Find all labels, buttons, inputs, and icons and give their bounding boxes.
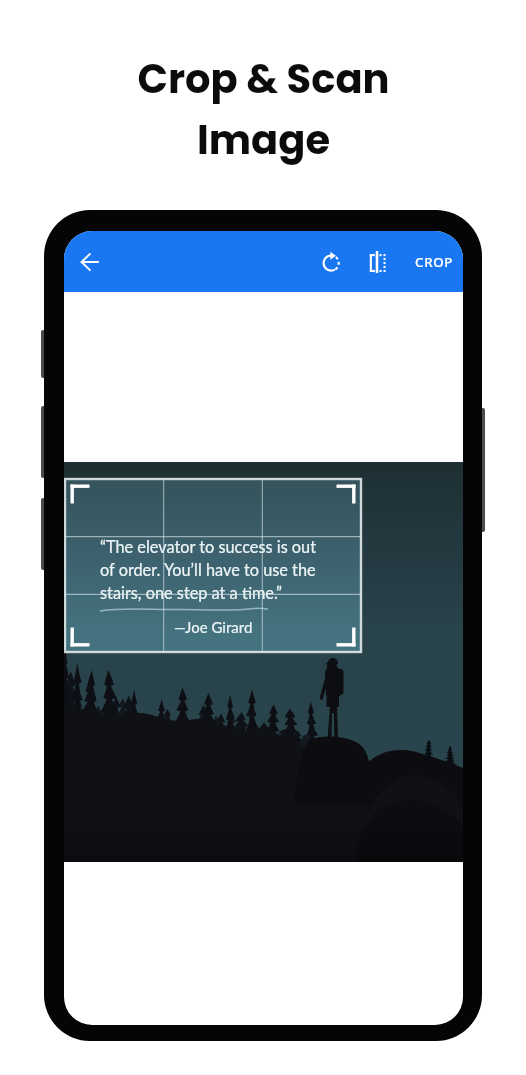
staticText: Crop & Scan Image xyxy=(137,51,390,168)
staticText: “The elevator to success is out of order… xyxy=(100,537,317,602)
staticText: —Joe Girard xyxy=(174,618,253,636)
staticText: CROP xyxy=(415,253,454,271)
button[interactable]: CROP xyxy=(404,243,462,281)
button[interactable]: Flip xyxy=(357,242,397,282)
button[interactable]: Back xyxy=(68,240,112,284)
button[interactable]: Rotate xyxy=(311,242,351,282)
